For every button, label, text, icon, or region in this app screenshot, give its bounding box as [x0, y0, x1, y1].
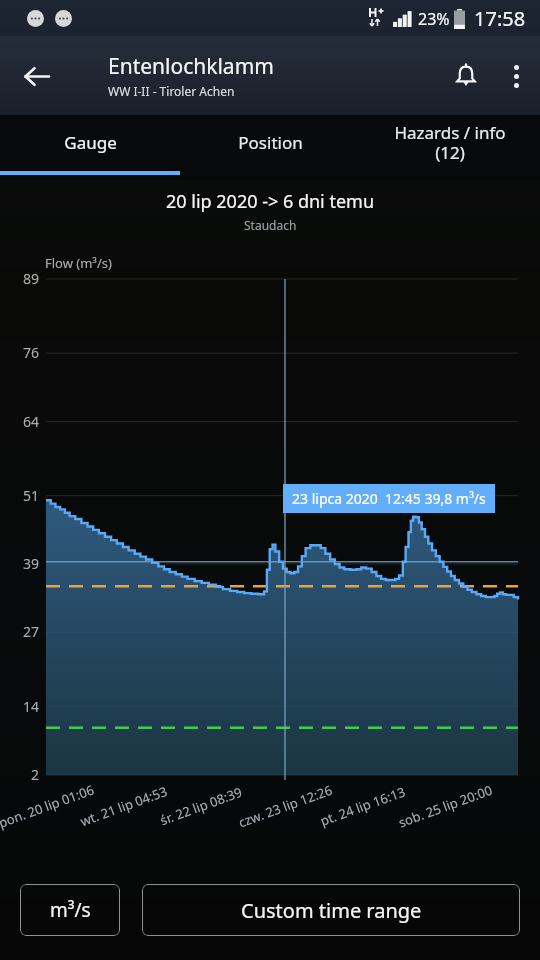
staticText: Staudach: [244, 217, 297, 233]
staticText: 2: [31, 765, 40, 784]
button[interactable]: Hazards / info (12): [360, 115, 540, 175]
button[interactable]: m³/s: [20, 884, 120, 936]
staticText: sob. 25 lip 20:00: [396, 781, 495, 831]
staticText: pt. 24 lip 16:13: [318, 782, 408, 830]
staticText: 27: [23, 622, 40, 641]
staticText: Entenlochklamm: [108, 52, 274, 81]
staticText: 89: [23, 269, 40, 288]
staticText: 20 lip 2020 -> 6 dni temu: [166, 189, 375, 214]
staticText: pon. 20 lip 01:06: [0, 780, 97, 832]
staticText: Flow (m³/s): [45, 254, 112, 272]
staticText: Custom time range: [241, 897, 422, 924]
staticText: czw. 23 lip 12:26: [236, 781, 335, 831]
staticText: m³/s: [50, 897, 91, 923]
staticText: 64: [23, 412, 40, 431]
staticText: Hazards / info (12): [394, 121, 506, 164]
staticText: Gauge: [64, 131, 117, 154]
button[interactable]: Notifications: [440, 50, 492, 102]
button[interactable]: Position: [180, 115, 360, 175]
button[interactable]: Back: [8, 48, 64, 104]
staticText: Position: [238, 131, 303, 154]
staticText: 51: [23, 486, 40, 505]
staticText: 17:58: [474, 5, 526, 32]
staticText: 23 lipca 2020 12:45 39,8 m³/s: [292, 489, 486, 508]
button[interactable]: Gauge: [0, 115, 180, 175]
staticText: 23%: [418, 8, 450, 30]
button[interactable]: More options: [492, 52, 540, 100]
staticText: WW I-II - Tiroler Achen: [108, 83, 235, 99]
staticText: 76: [23, 343, 40, 362]
button[interactable]: Custom time range: [142, 884, 520, 936]
staticText: 14: [23, 697, 40, 716]
staticText: śr. 22 lip 08:39: [157, 783, 244, 829]
staticText: wt. 21 lip 04:53: [78, 782, 170, 830]
staticText: 39: [23, 554, 40, 573]
